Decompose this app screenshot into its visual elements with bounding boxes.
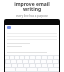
staticText: every line has a purpose in your message	[16, 14, 48, 21]
staticText: improve email writing	[14, 1, 50, 12]
